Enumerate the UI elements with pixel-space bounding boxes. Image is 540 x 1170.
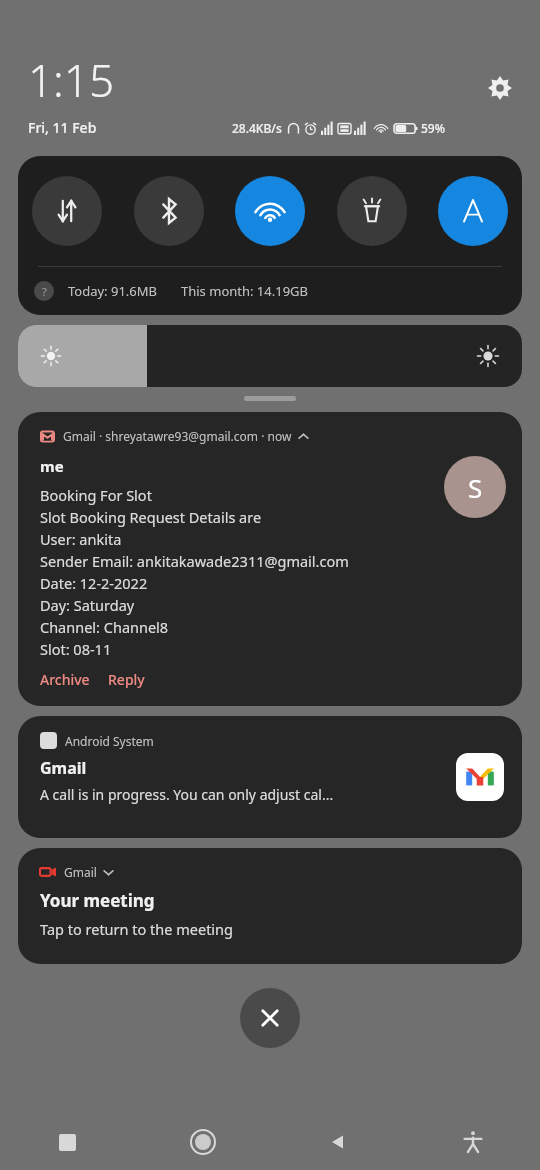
staticText: Day: Saturday xyxy=(40,595,135,615)
button[interactable]: Reply xyxy=(108,670,145,689)
staticText: Booking For Slot xyxy=(40,485,152,505)
staticText: Android System xyxy=(65,733,154,749)
staticText: Reply xyxy=(108,670,145,689)
staticText: A call is in progress. You can only adju… xyxy=(40,785,334,804)
button[interactable]: Bluetooth xyxy=(134,176,204,246)
staticText: This month: 14.19GB xyxy=(181,282,309,300)
staticText: Today: 91.6MB xyxy=(68,282,157,300)
staticText: 1:15 xyxy=(28,50,115,110)
button[interactable]: Mobile data xyxy=(32,176,102,246)
button[interactable]: Archive xyxy=(40,670,90,689)
button[interactable]: Wi-Fi xyxy=(235,176,305,246)
button[interactable]: Gmail · shreyatawre93@gmail.com · now xyxy=(18,412,522,706)
staticText: me xyxy=(40,456,64,476)
staticText: Sender Email: ankitakawade2311@gmail.com xyxy=(40,551,349,571)
staticText: User: ankita xyxy=(40,529,122,549)
button[interactable]: Android System xyxy=(18,716,522,838)
button[interactable]: Clear all notifications xyxy=(240,988,300,1048)
button[interactable]: Accessibility xyxy=(405,1114,540,1170)
staticText: 59% xyxy=(421,120,445,136)
button[interactable]: Recents xyxy=(0,1114,135,1170)
button[interactable]: Home xyxy=(135,1114,270,1170)
staticText: 28.4KB/s xyxy=(232,120,282,136)
button[interactable]: Back xyxy=(270,1114,405,1170)
staticText: Slot Booking Request Details are xyxy=(40,507,262,527)
staticText: Tap to return to the meeting xyxy=(40,919,233,939)
button[interactable]: Settings xyxy=(480,68,520,108)
staticText: S xyxy=(468,470,483,505)
staticText: Archive xyxy=(40,670,90,689)
staticText: Gmail · shreyatawre93@gmail.com · now xyxy=(63,428,292,444)
staticText: Your meeting xyxy=(40,889,155,912)
button[interactable]: Auto brightness xyxy=(438,176,508,246)
staticText: Date: 12-2-2022 xyxy=(40,573,148,593)
staticText: Slot: 08-11 xyxy=(40,639,112,659)
staticText: Fri, 11 Feb xyxy=(28,118,97,137)
button[interactable]: Gmail xyxy=(18,848,522,964)
staticText: Gmail xyxy=(64,864,97,880)
staticText: Gmail xyxy=(40,757,87,779)
button[interactable]: Flashlight xyxy=(337,176,407,246)
button[interactable]: Brightness xyxy=(18,325,522,387)
staticText: ? xyxy=(42,284,47,299)
staticText: Channel: Channel8 xyxy=(40,617,169,637)
